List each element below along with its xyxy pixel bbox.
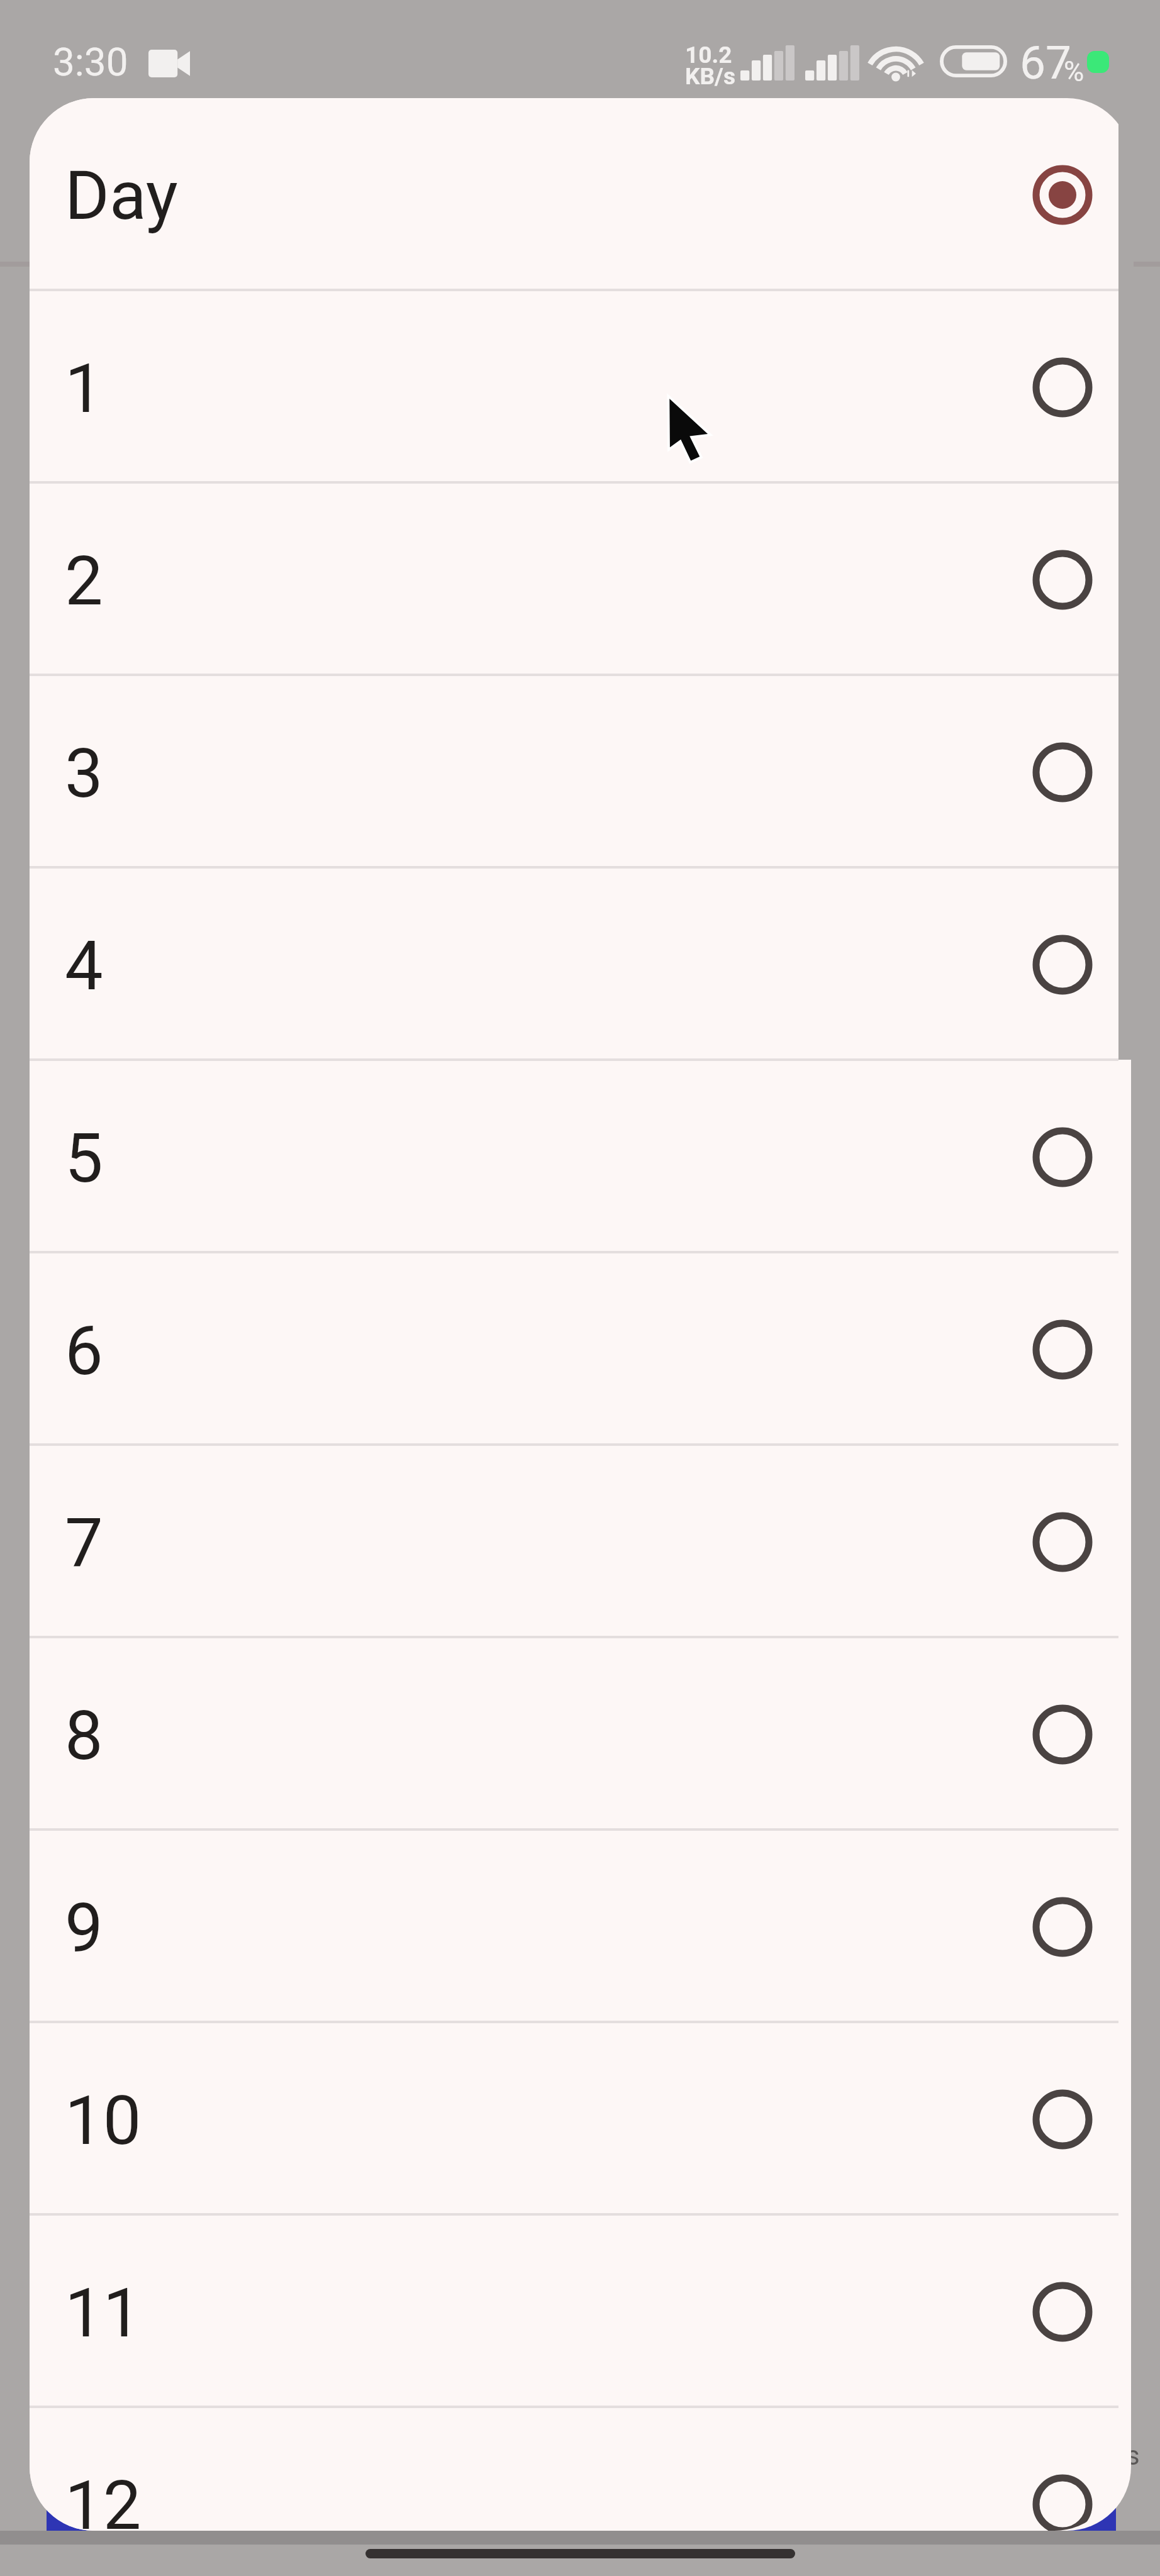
staticText: 10.2 [685,42,732,69]
button[interactable]: 8 [30,1638,1118,1831]
staticText: 3 [65,734,103,814]
staticText: % [1064,55,1085,88]
button[interactable]: 12 [30,2408,1118,2531]
staticText: 4 [65,926,103,1006]
staticText: 9 [65,1889,103,1968]
button[interactable]: 2 [30,484,1118,676]
staticText: 12 [65,2466,142,2531]
button[interactable]: 1 [30,291,1118,484]
staticText: 67 [1020,36,1072,90]
staticText: KB/s [685,63,735,90]
button[interactable]: 5 [30,1061,1118,1253]
button[interactable]: 7 [30,1446,1118,1638]
staticText: Day [65,156,178,236]
staticText: 3:30 [53,39,128,85]
button[interactable]: 6 [30,1253,1118,1446]
button[interactable]: 9 [30,1831,1118,2023]
button[interactable]: Day [30,98,1118,291]
staticText: 11 [65,2273,142,2353]
staticText: 8 [65,1696,103,1776]
button[interactable]: 10 [30,2023,1118,2216]
button[interactable]: 11 [30,2216,1118,2408]
staticText: s [1126,2440,1140,2471]
staticText: 10 [65,2081,142,2161]
staticText: 1 [65,349,103,429]
button[interactable]: 4 [30,869,1118,1061]
staticText: 6 [65,1311,103,1391]
button[interactable]: 3 [30,676,1118,869]
staticText: 5 [65,1119,103,1199]
staticText: 7 [65,1504,103,1584]
staticText: 2 [65,541,103,621]
